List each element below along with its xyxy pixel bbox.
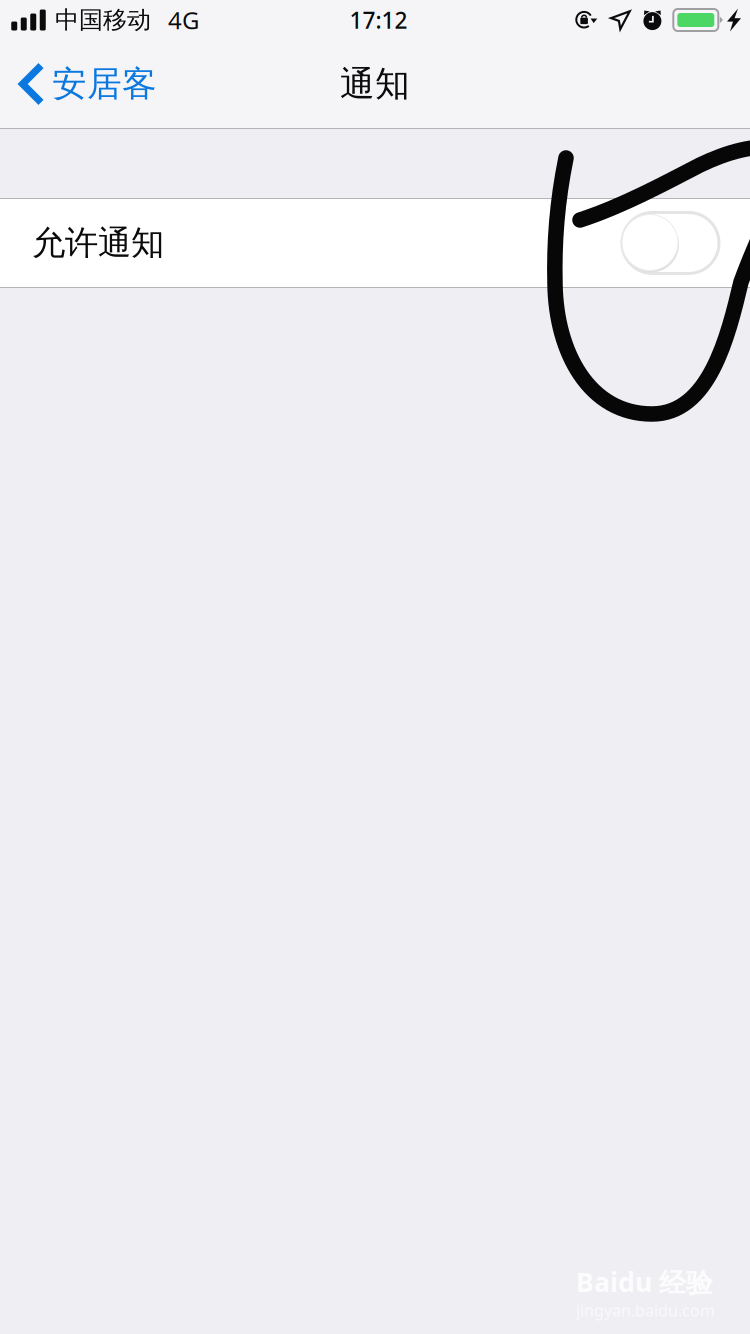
staticText: 通知: [340, 63, 410, 105]
staticText: 允许通知: [32, 222, 164, 263]
staticText: 4G: [168, 4, 199, 36]
button[interactable]: 允许通知: [0, 199, 750, 287]
staticText: 17:12: [349, 5, 407, 35]
staticText: 中国移动: [55, 5, 151, 35]
staticText: 安居客: [52, 63, 157, 105]
staticText: jingyan.baidu.com: [576, 1300, 715, 1321]
staticText: Baidu 经验: [576, 1264, 713, 1300]
button[interactable]: 安居客: [0, 40, 171, 128]
